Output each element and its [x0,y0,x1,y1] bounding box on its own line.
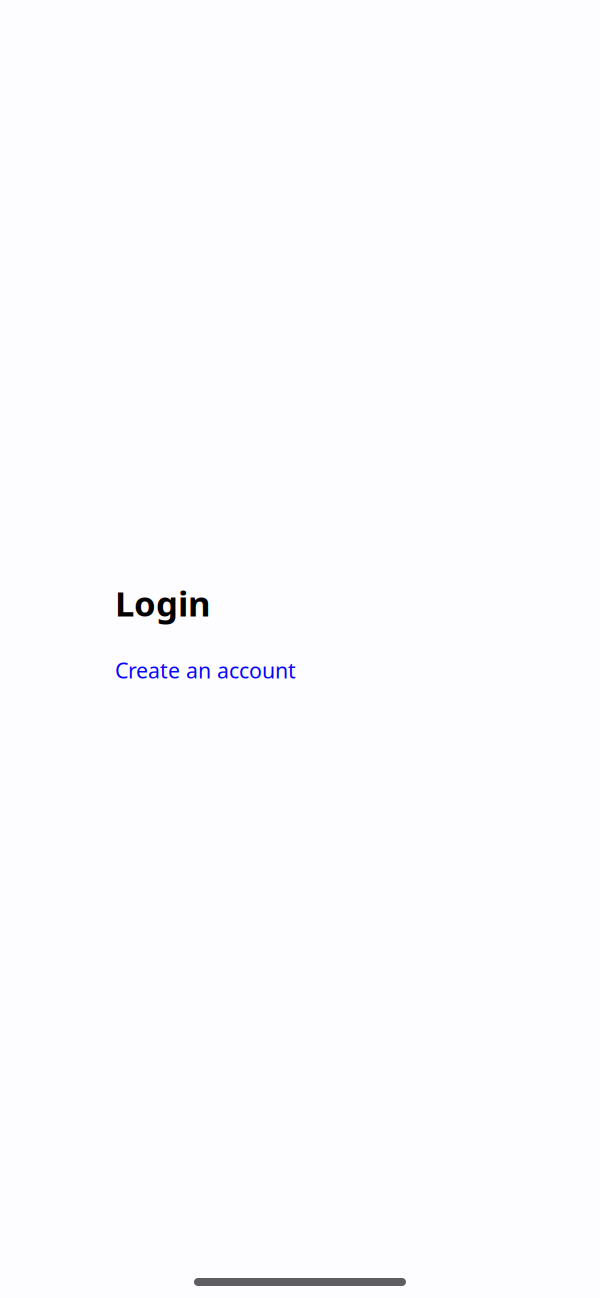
staticText: Login [115,580,211,626]
staticText: Create an account [115,656,296,684]
button[interactable]: Create an account [115,656,296,684]
